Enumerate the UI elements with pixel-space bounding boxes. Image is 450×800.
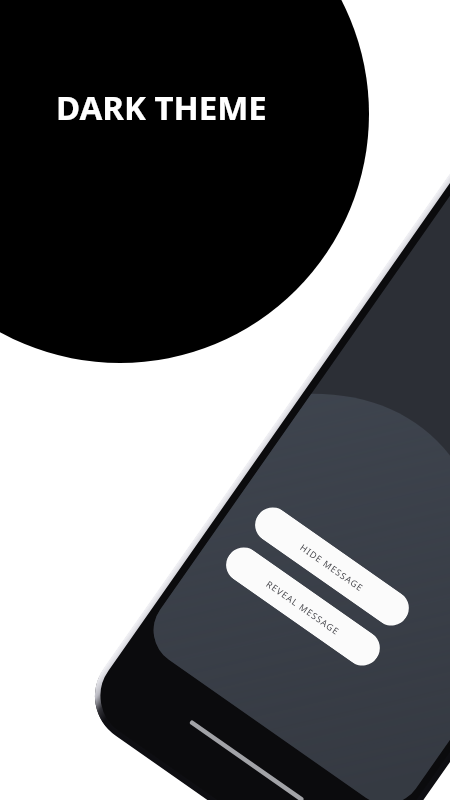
staticText: REVEAL MESSAGE — [264, 577, 342, 637]
staticText: HIDE MESSAGE — [298, 541, 366, 594]
staticText: DARK THEME — [56, 85, 267, 130]
button[interactable]: HIDE MESSAGE — [248, 500, 416, 632]
button[interactable]: REVEAL MESSAGE — [219, 540, 387, 672]
